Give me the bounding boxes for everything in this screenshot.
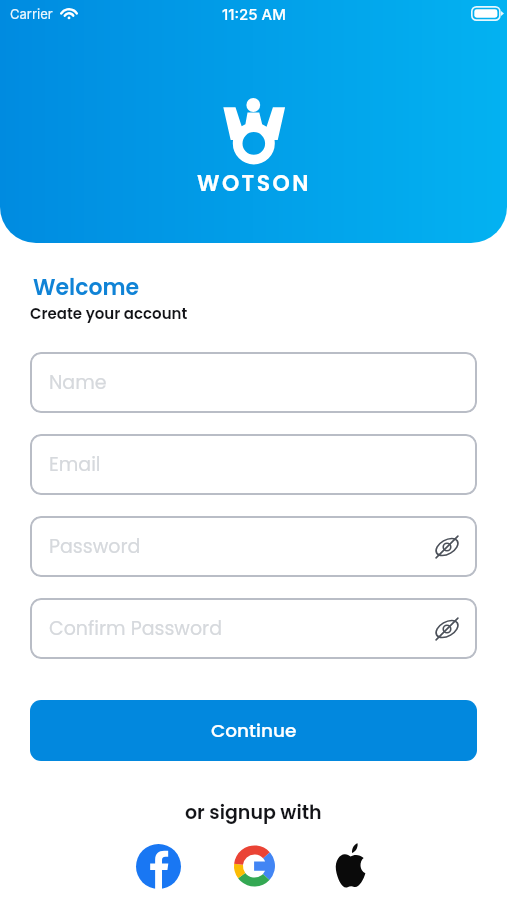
button[interactable]: Sign up with Google (229, 841, 279, 891)
staticText: WOTSON (197, 168, 311, 199)
staticText: Password (49, 533, 141, 560)
button[interactable]: Password (30, 516, 477, 577)
staticText: Welcome (33, 272, 140, 303)
button[interactable]: Sign up with Apple (325, 841, 375, 891)
staticText: Create your account (30, 303, 188, 324)
staticText: Name (49, 369, 107, 396)
button[interactable]: Show password (432, 614, 462, 644)
staticText: 11:25 AM (222, 5, 286, 23)
button[interactable]: Continue (30, 700, 477, 761)
button[interactable]: Email (30, 434, 477, 495)
button[interactable]: Show password (432, 532, 462, 562)
staticText: Continue (211, 718, 297, 744)
staticText: or signup with (185, 799, 322, 826)
staticText: Email (49, 451, 101, 478)
button[interactable]: Sign up with Facebook (133, 841, 183, 891)
staticText: Confirm Password (49, 615, 222, 642)
button[interactable]: Name (30, 352, 477, 413)
button[interactable]: Confirm Password (30, 598, 477, 659)
staticText: Carrier (10, 6, 53, 22)
